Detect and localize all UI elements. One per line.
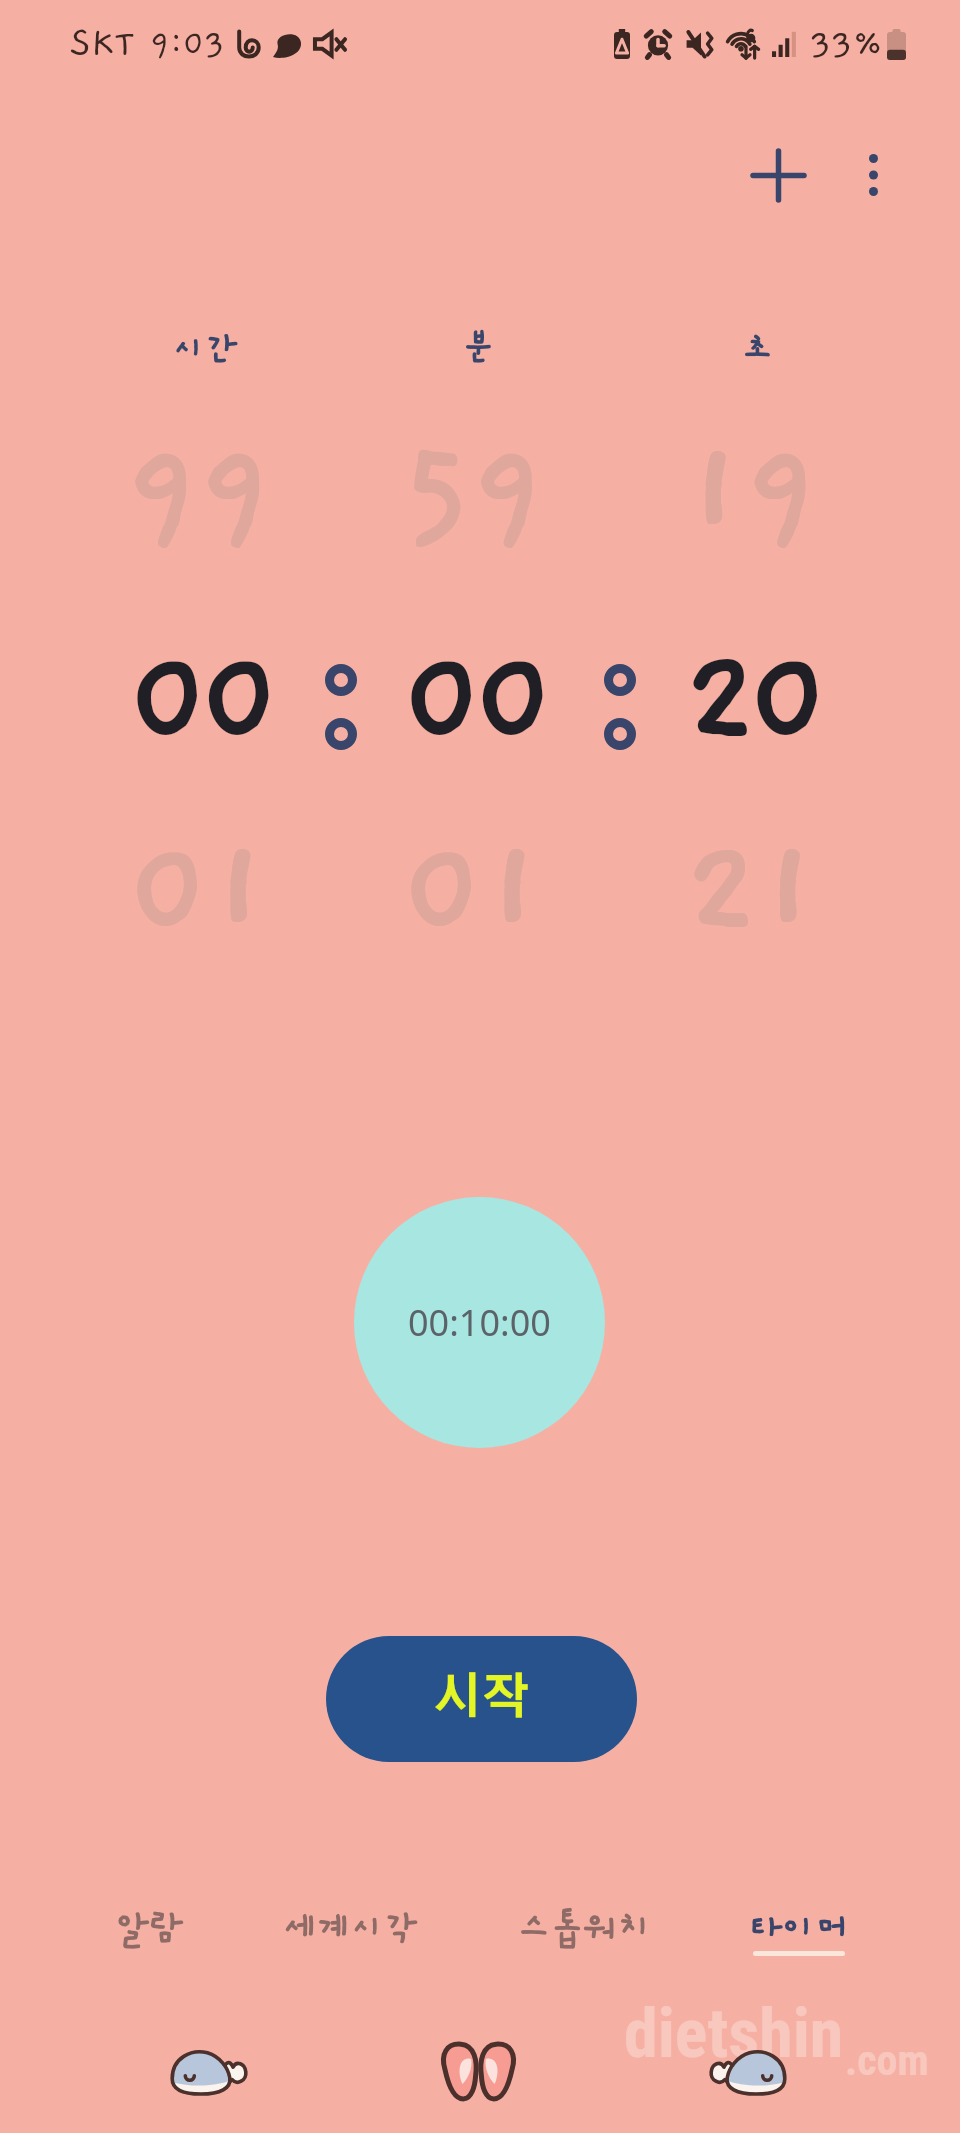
staticText: 99 (125, 419, 272, 559)
button[interactable]: 분 (388, 305, 568, 395)
button[interactable]: 00 (88, 626, 308, 766)
staticText: 타이머 (748, 1908, 849, 1949)
button[interactable]: 스톱워치 (474, 1908, 694, 2008)
button[interactable]: 시작 (326, 1636, 637, 1762)
staticText: 알람 (115, 1908, 183, 1949)
staticText: 시작 (434, 1675, 530, 1723)
button[interactable]: 세계시각 (240, 1908, 460, 2008)
staticText: 00:10:00 (408, 1298, 551, 1347)
button[interactable]: 20 (641, 626, 861, 766)
staticText: .com (845, 2036, 929, 2085)
button[interactable]: 타이머 (688, 1908, 908, 2008)
button[interactable]: 00 (362, 626, 582, 766)
staticText: SKT (70, 23, 135, 65)
button[interactable]: Add timer (733, 130, 823, 220)
button[interactable]: 00:10:00 (354, 1197, 605, 1448)
button[interactable]: Recent apps (688, 2030, 808, 2112)
staticText: 9:03 (150, 25, 225, 63)
staticText: 초 (741, 330, 774, 370)
staticText: 01 (401, 817, 544, 957)
staticText: 스톱워치 (517, 1908, 652, 1949)
staticText: 33% (810, 24, 883, 64)
button[interactable]: Back (149, 2030, 269, 2112)
button[interactable]: 시간 (115, 305, 295, 395)
staticText: 00 (401, 626, 544, 766)
staticText: 세계시각 (283, 1908, 418, 1949)
staticText: dietshin (624, 1994, 844, 2074)
staticText: 분 (462, 330, 495, 370)
button[interactable]: 초 (667, 305, 847, 395)
staticText: 01 (127, 817, 270, 957)
staticText: 19 (684, 419, 818, 559)
staticText: 20 (683, 626, 819, 766)
button[interactable]: More options (833, 135, 913, 215)
staticText: 59 (401, 419, 544, 559)
staticText: 21 (684, 817, 819, 957)
staticText: 시간 (172, 330, 238, 370)
button[interactable]: 알람 (39, 1908, 259, 2008)
staticText: 00 (127, 626, 270, 766)
button[interactable]: Home (418, 2030, 538, 2112)
